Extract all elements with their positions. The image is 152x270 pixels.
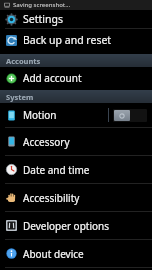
button[interactable]: Add account	[0, 67, 152, 89]
button[interactable]: Motion	[0, 103, 152, 127]
staticText: Date and time	[23, 163, 147, 177]
button[interactable]: Date and time	[0, 156, 152, 183]
button[interactable]: Accessory	[0, 128, 152, 155]
staticText: About device	[23, 247, 147, 261]
staticText: Back up and reset	[23, 33, 147, 47]
staticText: System	[6, 92, 34, 102]
staticText: Accounts	[6, 56, 41, 66]
button[interactable]: Accessibility	[0, 184, 152, 211]
staticText: Add account	[23, 71, 147, 85]
staticText: Accessory	[23, 135, 147, 149]
button[interactable]: Settings	[0, 10, 152, 28]
staticText: Saving screenshot...	[13, 1, 71, 9]
staticText: Accessibility	[23, 191, 147, 205]
button[interactable]: About device	[0, 240, 152, 267]
button[interactable]: Developer options	[0, 212, 152, 239]
staticText: Motion	[23, 108, 108, 122]
staticText: Developer options	[23, 219, 147, 233]
staticText: Settings	[23, 12, 147, 26]
button[interactable]: Motion toggle	[113, 109, 147, 122]
button[interactable]: Back up and reset	[0, 29, 152, 51]
